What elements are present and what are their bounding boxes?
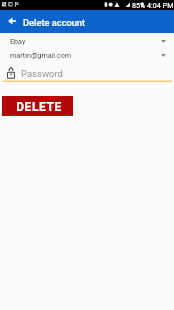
button[interactable]: Navigate up: [4, 13, 20, 29]
button[interactable]: Ebay: [0, 34, 174, 48]
staticText: 85%: [132, 1, 146, 9]
staticText: 4:04 PM: [147, 1, 174, 9]
staticText: Password: [21, 68, 63, 79]
staticText: Ebay: [10, 37, 26, 45]
staticText: martin@gmail.com: [10, 51, 72, 59]
button[interactable]: DELETE: [2, 96, 73, 116]
staticText: DELETE: [16, 100, 62, 114]
button[interactable]: Password: [0, 65, 174, 81]
staticText: Delete account: [23, 17, 86, 28]
button[interactable]: martin@gmail.com: [0, 48, 174, 62]
